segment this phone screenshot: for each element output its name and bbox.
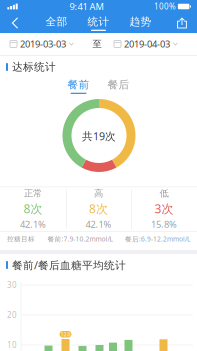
staticText: 30	[7, 280, 17, 290]
staticText: 餐前:7.9-10.2mmol/L	[47, 235, 112, 243]
button[interactable]: 全部	[35, 13, 77, 32]
button[interactable]: 趋势	[119, 13, 161, 32]
staticText: 8次	[89, 201, 108, 216]
staticText: 42.1%	[20, 218, 46, 230]
button[interactable]: 餐前	[64, 79, 92, 93]
staticText: 3次	[155, 201, 174, 216]
staticText: 统计	[87, 15, 109, 28]
staticText: 9:41 AM	[69, 0, 103, 13]
button[interactable]: 餐后	[104, 79, 132, 93]
staticText: 控糖目标	[7, 235, 35, 243]
staticText: 10	[7, 340, 17, 350]
staticText: 2019-03-03	[20, 38, 66, 50]
staticText: 共19次	[82, 129, 116, 143]
staticText: 至	[92, 38, 101, 50]
staticText: 达标统计	[12, 60, 56, 73]
staticText: 正常	[24, 188, 42, 199]
staticText: 全部	[45, 15, 67, 28]
staticText: 100%	[154, 1, 176, 12]
staticText: 8次	[23, 201, 42, 216]
staticText: 2019-04-03	[124, 38, 170, 50]
staticText: 餐前/餐后血糖平均统计	[12, 258, 126, 272]
button[interactable]: 2019-04-03	[114, 37, 186, 51]
staticText: 15.8%	[151, 218, 177, 230]
staticText: 低	[160, 188, 169, 199]
button[interactable]: Back	[3, 13, 27, 32]
staticText: 20	[7, 310, 17, 320]
button[interactable]: 统计	[77, 13, 119, 32]
staticText: 趋势	[129, 15, 151, 28]
staticText: 12.0	[60, 331, 70, 338]
staticText: 餐后	[107, 78, 129, 91]
staticText: 高	[94, 188, 103, 199]
staticText: 42.1%	[85, 218, 111, 230]
staticText: 餐后:6.9-12.2mmol/L	[125, 235, 190, 243]
staticText: 餐前	[67, 78, 89, 91]
button[interactable]: 2019-03-03	[10, 37, 82, 51]
button[interactable]: Share	[170, 13, 194, 32]
